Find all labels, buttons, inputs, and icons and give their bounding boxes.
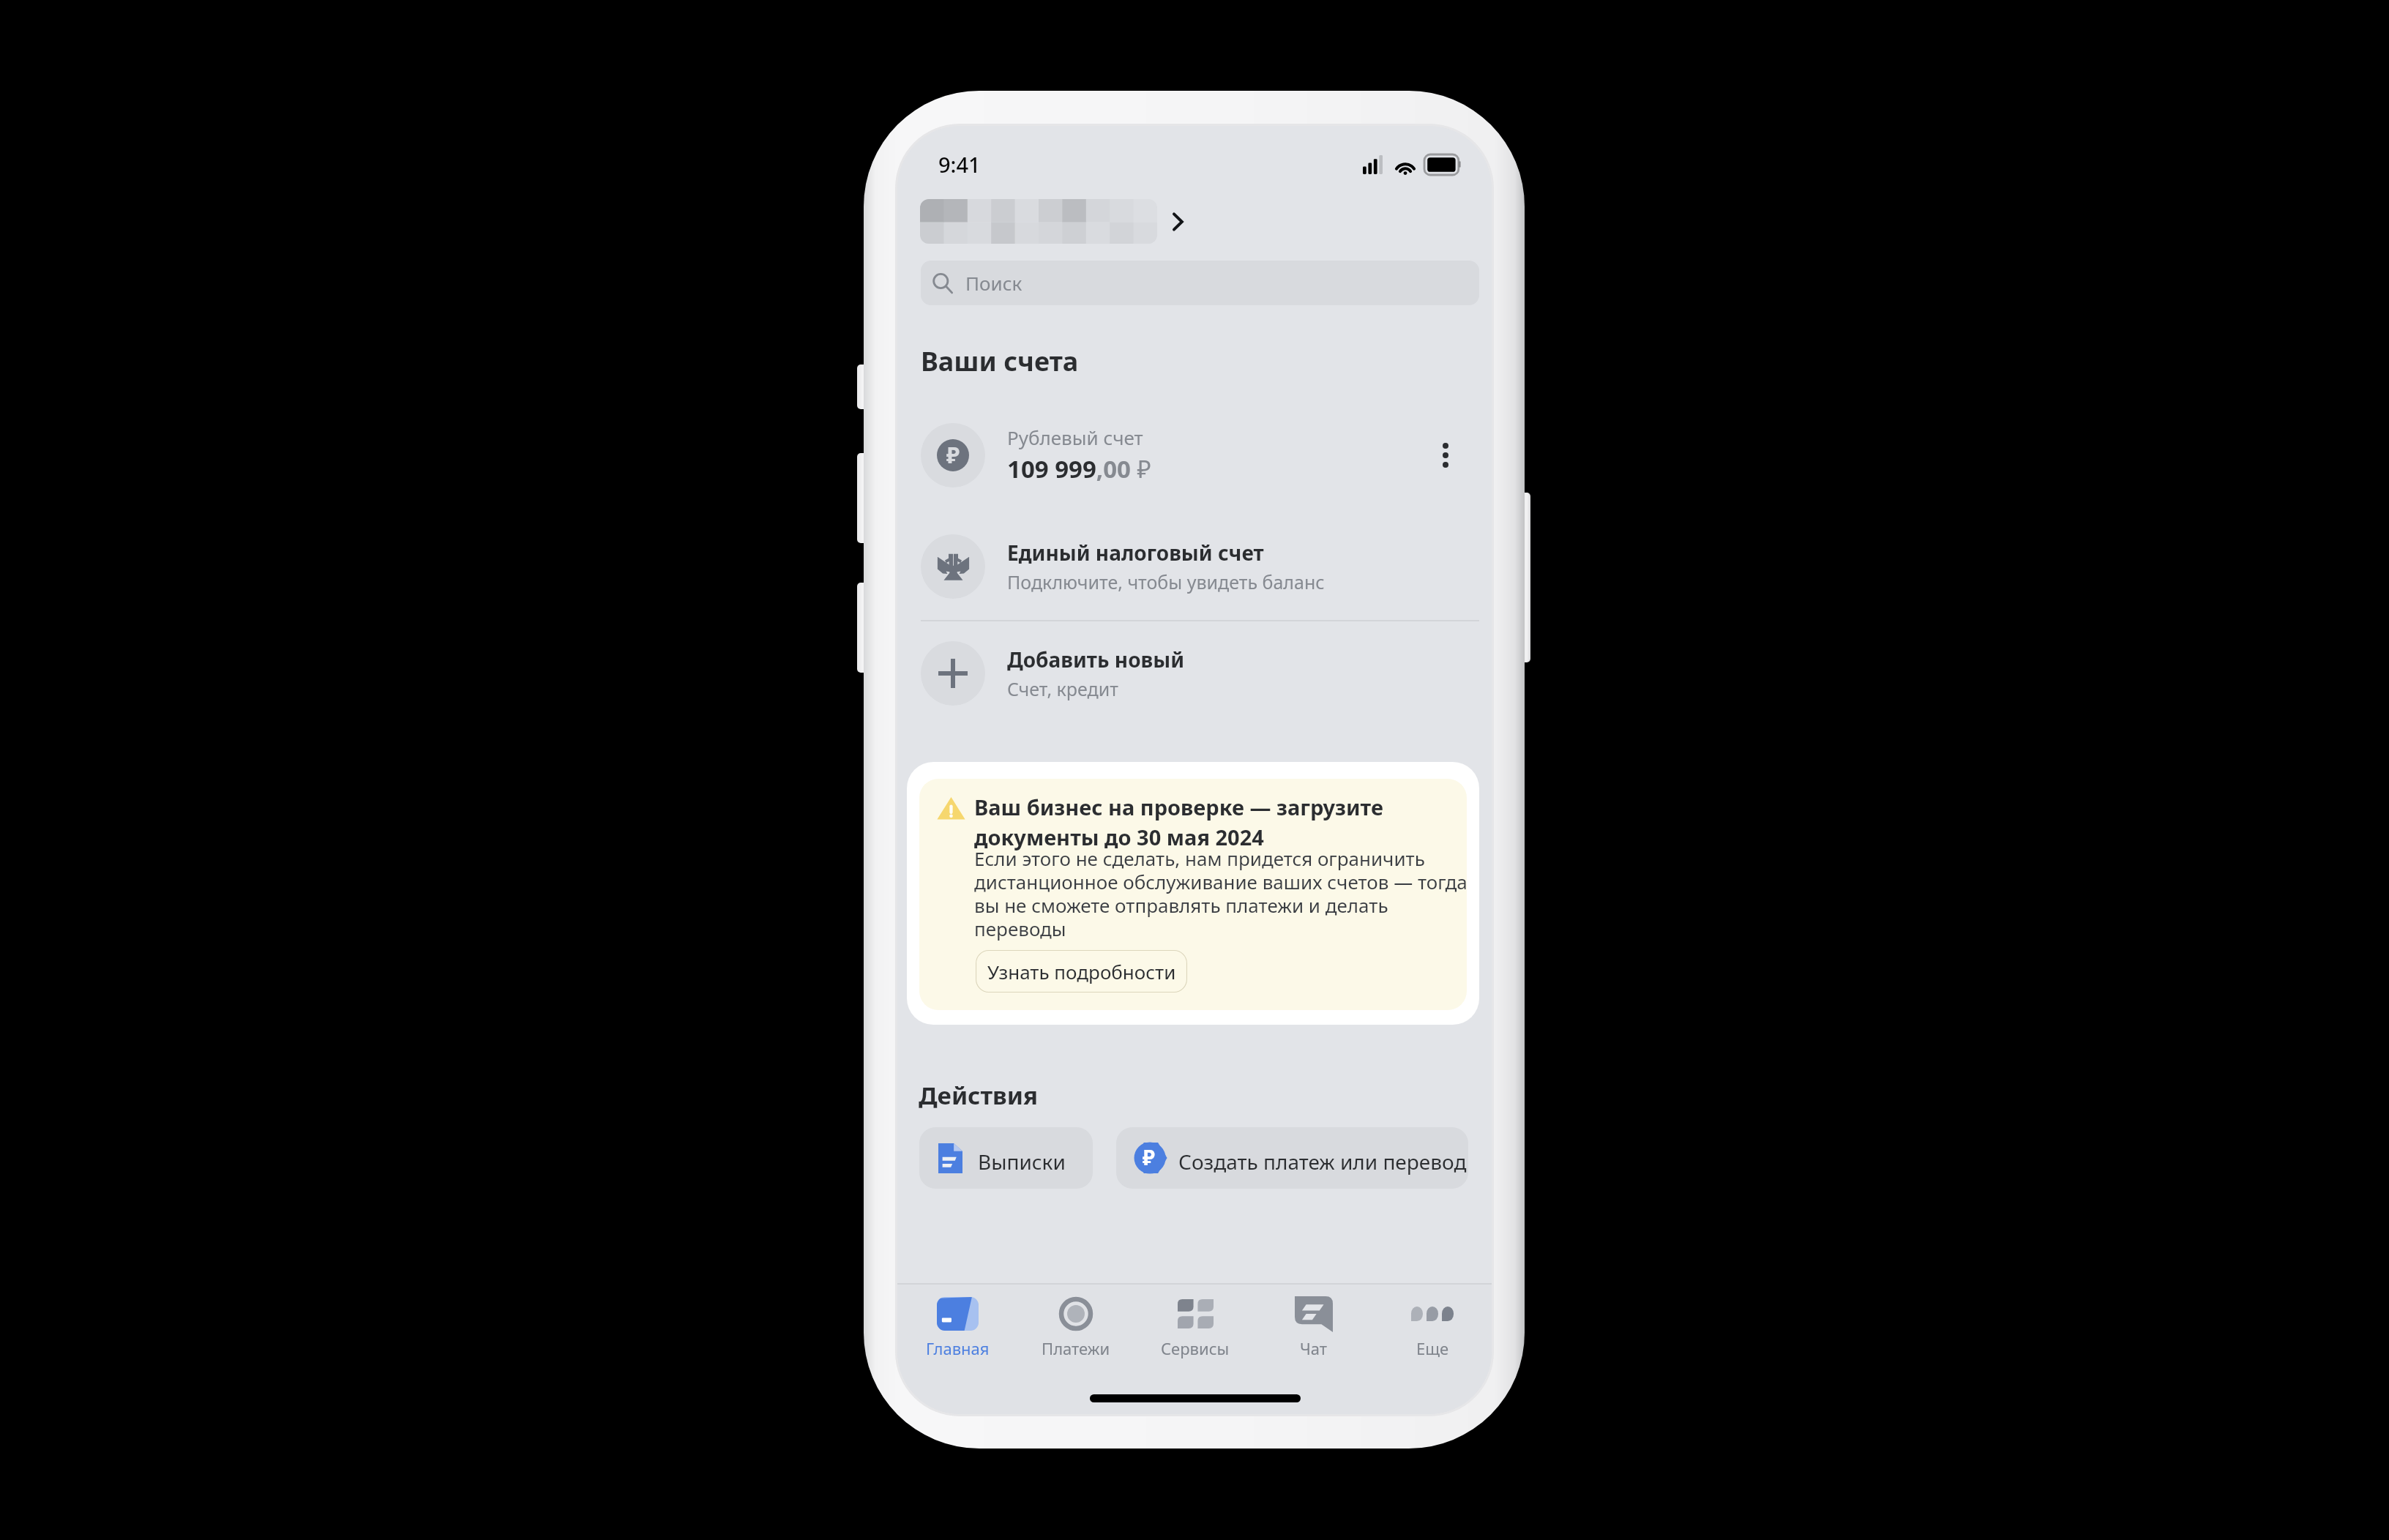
button[interactable]: Выписки (919, 1127, 1093, 1189)
button[interactable]: ₽ (1116, 1127, 1468, 1189)
button[interactable]: More options (1420, 430, 1471, 481)
staticText: 109 999,00 ₽ (1007, 452, 1151, 485)
button[interactable]: ₽ (897, 413, 1492, 497)
staticText: Сервисы (1161, 1337, 1230, 1359)
button[interactable]: Платежи (1031, 1293, 1121, 1367)
staticText: Подключите, чтобы увидеть баланс (1007, 569, 1325, 594)
staticText: ₽ (946, 440, 960, 470)
staticText: Выписки (978, 1148, 1066, 1175)
staticText: Создать платеж или перевод (1178, 1148, 1468, 1175)
staticText: Платежи (1042, 1337, 1110, 1359)
staticText: Добавить новый (1007, 646, 1185, 673)
staticText: Рублевый счет (1007, 425, 1143, 450)
staticText: Если этого не сделать, нам придется огра… (974, 845, 1467, 942)
staticText: 9:41 (938, 150, 981, 179)
button[interactable]: Ваш бизнес на проверке — загрузите докум… (919, 779, 1467, 1010)
staticText: Еще (1416, 1337, 1449, 1359)
staticText: Действия (919, 1079, 1038, 1112)
button[interactable]: Еще (1387, 1293, 1478, 1367)
staticText: Узнать подробности (987, 959, 1176, 984)
button[interactable]: Единый налоговый счет (897, 530, 1492, 603)
staticText: Единый налоговый счет (1007, 539, 1264, 567)
button[interactable]: Сервисы (1150, 1293, 1241, 1367)
button[interactable]: Чат (1268, 1293, 1359, 1367)
button[interactable]: Узнать подробности (976, 950, 1187, 993)
button[interactable]: Account profile (920, 199, 1183, 244)
staticText: Чат (1300, 1337, 1328, 1359)
staticText: ₽ (1143, 1143, 1155, 1171)
staticText: Главная (926, 1337, 990, 1359)
staticText: Ваши счета (921, 343, 1079, 379)
staticText: Ваш бизнес на проверке — загрузите докум… (974, 793, 1466, 852)
staticText: Поиск (965, 270, 1022, 296)
button[interactable]: Добавить новый (897, 637, 1492, 710)
button[interactable]: Поиск (921, 261, 1479, 305)
button[interactable]: Главная (912, 1293, 1003, 1367)
staticText: Счет, кредит (1007, 676, 1118, 701)
